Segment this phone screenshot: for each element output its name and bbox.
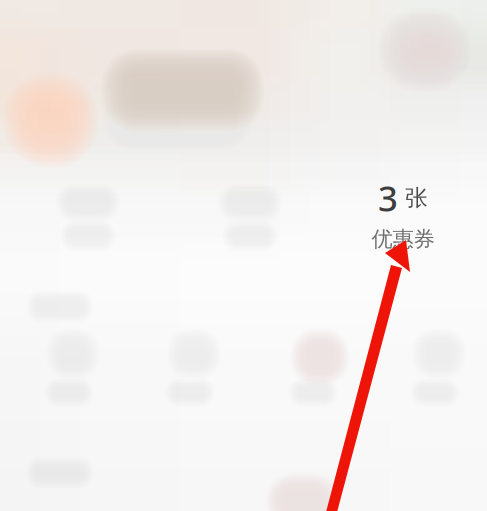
staticText: 张 xyxy=(405,184,428,212)
staticText: 3 xyxy=(378,175,398,221)
staticText: 优惠券 xyxy=(371,226,434,252)
button[interactable]: 3 xyxy=(356,175,450,252)
